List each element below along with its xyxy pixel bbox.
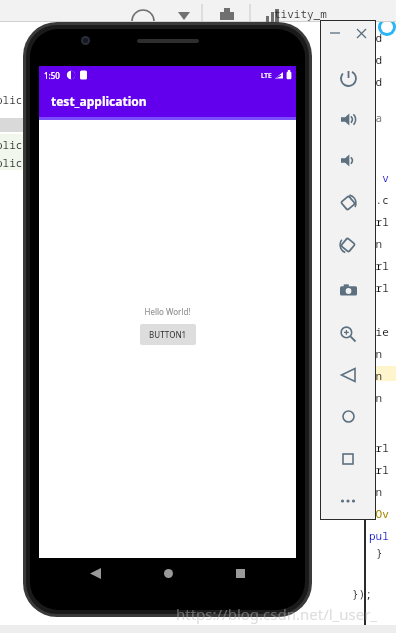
staticText: 1:50 xyxy=(44,70,60,81)
button[interactable]: Rotate right xyxy=(333,230,363,260)
button[interactable]: Back xyxy=(333,360,363,390)
staticText: Ma xyxy=(369,110,383,125)
staticText: on xyxy=(369,484,383,499)
staticText: e xyxy=(369,148,376,163)
button[interactable]: Home xyxy=(151,558,185,588)
button[interactable]: Overview xyxy=(333,444,363,474)
button[interactable]: Back xyxy=(78,558,112,588)
button[interactable]: More xyxy=(333,486,363,516)
staticText: on xyxy=(369,368,383,383)
button[interactable]: Power xyxy=(333,63,363,93)
staticText: @Ov xyxy=(369,506,389,521)
staticText: arl xyxy=(369,258,389,273)
staticText: pul xyxy=(369,528,389,543)
staticText: arl xyxy=(369,462,389,477)
staticText: }); xyxy=(352,586,372,601)
staticText: arl xyxy=(369,440,389,455)
staticText: tivity_m xyxy=(274,6,327,21)
staticText: Hello World! xyxy=(144,306,191,317)
staticText: Vie xyxy=(369,324,389,339)
staticText: plica xyxy=(0,137,29,152)
button[interactable]: BUTTON1 xyxy=(140,324,196,345)
staticText: plica xyxy=(0,155,29,170)
button[interactable]: Zoom xyxy=(333,319,363,349)
staticText: https://blog.csdn.net/l_user_ xyxy=(176,604,378,624)
staticText: r.c xyxy=(369,192,389,207)
staticText: id xyxy=(369,30,383,45)
staticText: LTE xyxy=(261,71,272,80)
button[interactable]: Minimize xyxy=(326,24,344,42)
staticText: l xyxy=(369,302,383,317)
staticText: on xyxy=(369,390,383,405)
button[interactable]: Recent apps xyxy=(223,558,257,588)
button[interactable]: Volume down xyxy=(333,145,363,175)
staticText: } xyxy=(376,545,383,560)
staticText: on xyxy=(369,346,383,361)
staticText: on xyxy=(369,368,383,383)
button[interactable]: Close xyxy=(352,24,370,42)
button[interactable]: Volume up xyxy=(333,104,363,134)
staticText: id xyxy=(369,52,383,67)
staticText: on xyxy=(369,236,383,251)
button[interactable]: Home xyxy=(333,401,363,431)
button[interactable]: Rotate left xyxy=(333,188,363,218)
staticText: arl xyxy=(369,214,389,229)
staticText: id xyxy=(369,74,383,89)
staticText: BUTTON1 xyxy=(149,329,187,340)
button[interactable]: test_application xyxy=(39,84,296,117)
staticText: plica xyxy=(0,92,29,107)
staticText: test_application xyxy=(51,93,147,109)
staticText: arl xyxy=(369,280,389,295)
staticText: d v xyxy=(369,170,389,185)
button[interactable]: Take screenshot xyxy=(333,275,363,305)
